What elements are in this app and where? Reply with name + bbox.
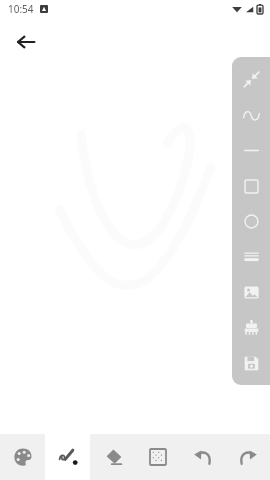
button[interactable]: Curve (232, 98, 270, 132)
button[interactable]: Back (6, 22, 46, 62)
button[interactable]: Eraser (90, 434, 135, 480)
button[interactable]: Rectangle (232, 169, 270, 203)
button[interactable]: Collapse (232, 62, 270, 96)
button[interactable]: Image (232, 275, 270, 309)
staticText: 10:54 (8, 2, 34, 16)
button[interactable]: Palette (0, 434, 45, 480)
button[interactable]: Redo (225, 434, 270, 480)
button[interactable]: Line (232, 133, 270, 167)
button[interactable]: Brush (232, 310, 270, 344)
button[interactable]: Circle (232, 204, 270, 238)
button[interactable]: Pattern (135, 434, 180, 480)
button[interactable]: Undo (180, 434, 225, 480)
button[interactable]: Layers (232, 239, 270, 273)
button[interactable]: Save (232, 346, 270, 380)
button[interactable]: Pen (45, 434, 90, 480)
